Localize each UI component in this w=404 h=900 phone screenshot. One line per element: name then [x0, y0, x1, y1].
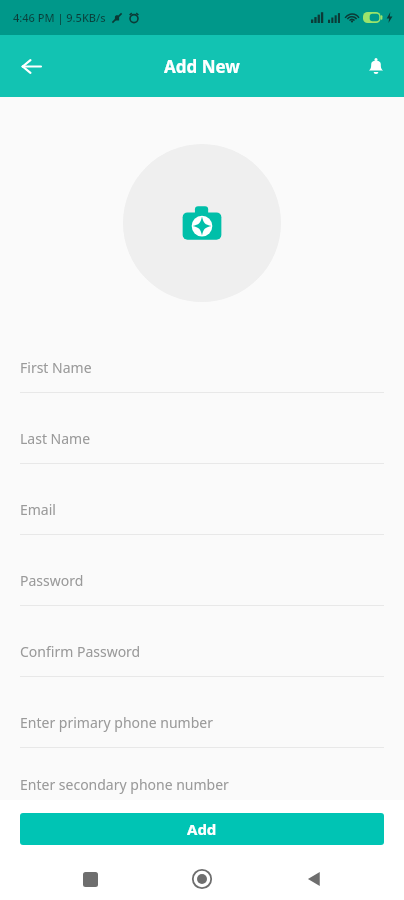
staticText: First Name	[20, 358, 92, 377]
button[interactable]: Last Name	[0, 414, 404, 485]
staticText: Email	[20, 500, 56, 519]
button[interactable]: Add	[20, 813, 384, 845]
button[interactable]: Back	[292, 858, 336, 900]
staticText: Last Name	[20, 429, 91, 448]
button[interactable]: Home	[180, 858, 224, 900]
button[interactable]: Enter primary phone number	[0, 698, 404, 769]
button[interactable]: Confirm Password	[0, 627, 404, 698]
button[interactable]: First Name	[0, 343, 404, 414]
staticText: 4:46 PM | 9.5KB/s	[13, 10, 106, 25]
staticText: Add New	[164, 55, 240, 78]
button[interactable]: Enter secondary phone number	[0, 769, 404, 800]
staticText: Confirm Password	[20, 642, 141, 661]
button[interactable]: Password	[0, 556, 404, 627]
staticText: Enter secondary phone number	[20, 775, 229, 794]
button[interactable]: Add photo	[123, 144, 281, 302]
button[interactable]: Notifications	[357, 47, 395, 85]
button[interactable]: Email	[0, 485, 404, 556]
button[interactable]: Recent apps	[68, 858, 112, 900]
staticText: Enter primary phone number	[20, 713, 213, 732]
staticText: Password	[20, 571, 84, 590]
staticText: Add	[187, 819, 217, 839]
button[interactable]: Back	[11, 46, 51, 86]
